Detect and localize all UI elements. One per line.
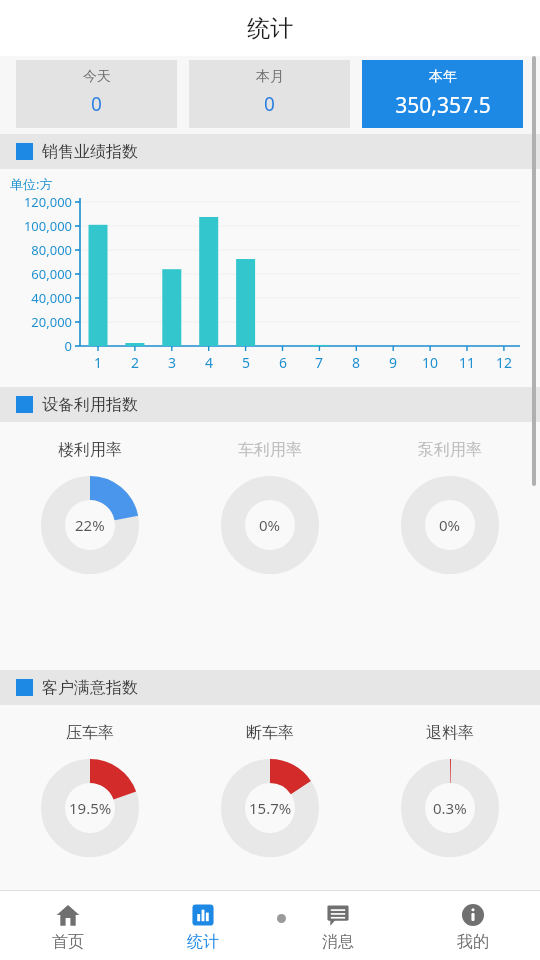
button[interactable]: 消息: [270, 890, 405, 960]
button[interactable]: 断车率: [180, 705, 360, 890]
staticText: 0: [91, 91, 102, 117]
staticText: 统计: [247, 14, 293, 43]
button[interactable]: 退料率: [360, 705, 540, 890]
staticText: 20,000: [0, 313, 72, 331]
staticText: 350,357.5: [395, 91, 491, 120]
staticText: 本年: [429, 68, 457, 86]
staticText: 单位:方: [10, 175, 53, 193]
staticText: 0%: [439, 515, 461, 535]
staticText: 楼利用率: [58, 440, 122, 460]
button[interactable]: 车利用率: [180, 422, 360, 670]
staticText: 本月: [256, 68, 284, 86]
button[interactable]: 统计: [135, 890, 270, 960]
staticText: 退料率: [426, 723, 474, 743]
staticText: 5: [231, 353, 261, 372]
staticText: 11: [452, 353, 482, 372]
staticText: 22%: [75, 515, 105, 535]
staticText: 80,000: [0, 241, 72, 259]
button[interactable]: 首页: [0, 890, 135, 960]
button[interactable]: 楼利用率: [0, 422, 180, 670]
button[interactable]: 本年: [362, 60, 523, 128]
staticText: 10: [415, 353, 445, 372]
staticText: 断车率: [246, 723, 294, 743]
button[interactable]: 压车率: [0, 705, 180, 890]
staticText: 12: [489, 353, 519, 372]
staticText: 4: [194, 353, 224, 372]
staticText: 泵利用率: [418, 440, 482, 460]
staticText: 0%: [259, 515, 281, 535]
staticText: 压车率: [66, 723, 114, 743]
staticText: 3: [157, 353, 187, 372]
staticText: 15.7%: [249, 798, 292, 818]
staticText: 100,000: [0, 217, 72, 235]
staticText: 车利用率: [238, 440, 302, 460]
staticText: 0: [264, 91, 275, 117]
button[interactable]: 泵利用率: [360, 422, 540, 670]
staticText: 首页: [52, 932, 84, 952]
staticText: 40,000: [0, 289, 72, 307]
staticText: 7: [304, 353, 334, 372]
staticText: 120,000: [0, 193, 72, 211]
staticText: 60,000: [0, 265, 72, 283]
staticText: 消息: [322, 932, 354, 952]
button[interactable]: 今天: [16, 60, 177, 128]
staticText: 1: [83, 353, 113, 372]
staticText: 8: [341, 353, 371, 372]
staticText: 我的: [457, 932, 489, 952]
staticText: 0.3%: [433, 798, 467, 818]
staticText: 销售业绩指数: [42, 142, 138, 162]
staticText: 客户满意指数: [42, 678, 138, 698]
staticText: 6: [268, 353, 298, 372]
staticText: 19.5%: [69, 798, 112, 818]
button[interactable]: 本月: [189, 60, 350, 128]
staticText: 9: [378, 353, 408, 372]
staticText: 今天: [83, 68, 111, 86]
staticText: 2: [120, 353, 150, 372]
staticText: 0: [0, 337, 72, 355]
staticText: 设备利用指数: [42, 395, 138, 415]
button[interactable]: 我的: [405, 890, 540, 960]
staticText: 统计: [187, 932, 219, 952]
